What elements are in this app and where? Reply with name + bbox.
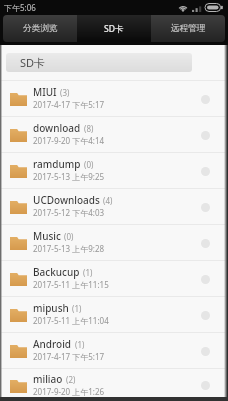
button[interactable]: 远程管理 bbox=[151, 15, 225, 42]
staticText: (8) bbox=[84, 123, 94, 134]
staticText: Android bbox=[33, 337, 72, 351]
staticText: 远程管理 bbox=[171, 23, 206, 34]
staticText: 2017-4-17 下午5:17 bbox=[33, 351, 105, 362]
button[interactable]: Select bbox=[200, 202, 210, 212]
staticText: 2017-5-13 上午9:28 bbox=[33, 243, 105, 254]
button[interactable]: download bbox=[0, 117, 228, 153]
button[interactable]: MIUI bbox=[0, 81, 228, 117]
button[interactable]: Select bbox=[200, 346, 210, 356]
button[interactable]: Select bbox=[200, 310, 210, 320]
button[interactable]: Select bbox=[200, 380, 210, 390]
button[interactable]: miliao bbox=[0, 369, 228, 401]
button[interactable]: Music bbox=[0, 225, 228, 261]
staticText: (1) bbox=[72, 303, 82, 314]
staticText: 2017-4-17 下午5:17 bbox=[33, 99, 105, 110]
staticText: ramdump bbox=[33, 157, 81, 171]
button[interactable]: Select bbox=[200, 274, 210, 284]
staticText: (2) bbox=[66, 374, 76, 385]
staticText: 分类浏览 bbox=[23, 23, 58, 34]
staticText: MIUI bbox=[33, 85, 57, 99]
button[interactable]: Backucup bbox=[0, 261, 228, 297]
staticText: (0) bbox=[64, 231, 74, 242]
button[interactable]: SD卡 bbox=[6, 53, 192, 72]
staticText: 2017-5-11 上午11:04 bbox=[33, 315, 109, 326]
button[interactable]: UCDownloads bbox=[0, 189, 228, 225]
staticText: Music bbox=[33, 229, 61, 243]
button[interactable]: Select bbox=[200, 130, 210, 140]
staticText: 2017-5-11 上午11:15 bbox=[33, 279, 109, 290]
button[interactable]: Android bbox=[0, 333, 228, 369]
staticText: (4) bbox=[103, 195, 113, 206]
button[interactable]: Select bbox=[200, 94, 210, 104]
staticText: SD卡 bbox=[104, 23, 124, 35]
staticText: (0) bbox=[84, 159, 94, 170]
staticText: Backucup bbox=[33, 265, 80, 279]
button[interactable]: ramdump bbox=[0, 153, 228, 189]
staticText: 2017-5-12 下午4:03 bbox=[33, 207, 105, 218]
staticText: SD卡 bbox=[20, 55, 46, 70]
button[interactable]: SD卡 bbox=[77, 15, 151, 42]
button[interactable]: Select bbox=[200, 166, 210, 176]
button[interactable]: 分类浏览 bbox=[3, 15, 77, 42]
staticText: UCDownloads bbox=[33, 193, 100, 207]
staticText: mipush bbox=[33, 301, 69, 315]
staticText: 2017-9-20 上午1:26 bbox=[33, 386, 105, 397]
staticText: 下午5:06 bbox=[4, 2, 36, 13]
staticText: 2017-9-20 下午4:14 bbox=[33, 135, 105, 146]
staticText: 2017-5-13 上午9:25 bbox=[33, 171, 105, 182]
button[interactable]: mipush bbox=[0, 297, 228, 333]
staticText: (1) bbox=[75, 339, 85, 350]
staticText: (1) bbox=[83, 267, 93, 278]
staticText: download bbox=[33, 121, 81, 135]
button[interactable]: Select bbox=[200, 238, 210, 248]
staticText: (3) bbox=[60, 87, 70, 98]
staticText: miliao bbox=[33, 372, 63, 386]
